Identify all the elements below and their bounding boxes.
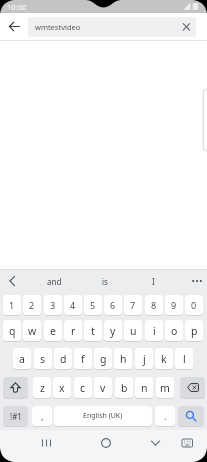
button[interactable]: j	[135, 348, 153, 369]
button[interactable]: k	[155, 348, 173, 369]
staticText: is	[102, 276, 108, 287]
button[interactable]: 5	[84, 295, 102, 315]
staticText: 3	[50, 299, 56, 311]
staticText: I	[152, 276, 155, 287]
button[interactable]	[92, 431, 117, 455]
staticText: w	[28, 324, 37, 338]
staticText: d	[60, 352, 67, 366]
button[interactable]	[175, 431, 200, 455]
button[interactable]	[28, 17, 196, 37]
staticText: s	[40, 352, 46, 366]
button[interactable]: n	[135, 377, 153, 398]
staticText: 10:00	[7, 2, 27, 12]
button[interactable]	[141, 431, 166, 455]
button[interactable]: x	[53, 377, 71, 398]
staticText: o	[171, 324, 178, 338]
button[interactable]: w	[23, 320, 41, 341]
button[interactable]: 7	[124, 295, 142, 315]
button[interactable]: 4	[64, 295, 82, 315]
staticText: n	[141, 381, 148, 395]
button[interactable]: 0	[185, 295, 203, 315]
staticText: x	[59, 381, 65, 395]
button[interactable]: g	[94, 348, 112, 369]
button[interactable]: b	[115, 377, 133, 398]
button[interactable]: ,	[32, 406, 52, 426]
button[interactable]: l	[175, 348, 193, 369]
staticText: English (UK)	[83, 411, 123, 421]
button[interactable]: c	[74, 377, 92, 398]
staticText: 5	[90, 299, 96, 311]
button[interactable]	[183, 269, 207, 293]
button[interactable]: u	[124, 320, 142, 341]
button[interactable]	[178, 17, 196, 37]
staticText: 1	[9, 299, 15, 311]
staticText: k	[161, 352, 167, 366]
button[interactable]: 2	[23, 295, 41, 315]
button[interactable]: i	[145, 320, 163, 341]
button[interactable]: y	[104, 320, 122, 341]
staticText: c	[80, 381, 86, 395]
staticText: y	[110, 324, 116, 338]
button[interactable]: d	[54, 348, 72, 369]
button[interactable]: 3	[44, 295, 62, 315]
staticText: e	[50, 324, 56, 338]
staticText: 2	[29, 299, 35, 311]
button[interactable]: r	[64, 320, 82, 341]
staticText: g	[100, 352, 107, 366]
staticText: l	[183, 352, 186, 366]
staticText: wmtestvideo	[35, 22, 81, 32]
button[interactable]: m	[156, 377, 174, 398]
staticText: and	[47, 276, 62, 287]
button[interactable]: English (UK)	[54, 406, 152, 426]
button[interactable]	[3, 377, 28, 398]
staticText: v	[100, 381, 106, 395]
button[interactable]: t	[84, 320, 102, 341]
button[interactable]: v	[94, 377, 112, 398]
button[interactable]: 8	[145, 295, 163, 315]
staticText: h	[120, 352, 127, 366]
staticText: !#1	[10, 411, 22, 422]
staticText: z	[40, 381, 45, 395]
button[interactable]	[178, 406, 204, 426]
staticText: .	[164, 410, 167, 423]
staticText: u	[130, 324, 137, 338]
button[interactable]: o	[165, 320, 183, 341]
button[interactable]: 6	[104, 295, 122, 315]
staticText: ,	[41, 410, 44, 423]
button[interactable]: !#1	[3, 406, 28, 426]
staticText: 6	[110, 299, 116, 311]
button[interactable]: 1	[3, 295, 21, 315]
button[interactable]: e	[44, 320, 62, 341]
button[interactable]: p	[185, 320, 203, 341]
button[interactable]: z	[33, 377, 51, 398]
button[interactable]	[33, 431, 58, 455]
staticText: t	[91, 324, 95, 338]
staticText: 8	[151, 299, 157, 311]
staticText: m	[160, 381, 170, 395]
staticText: p	[191, 324, 198, 338]
button[interactable]: f	[74, 348, 92, 369]
staticText: a	[19, 352, 25, 366]
staticText: f	[81, 352, 85, 366]
staticText: b	[121, 381, 128, 395]
staticText: r	[71, 324, 76, 338]
button[interactable]: s	[34, 348, 52, 369]
staticText: 7	[130, 299, 136, 311]
button[interactable]: .	[155, 406, 175, 426]
staticText: 4	[70, 299, 76, 311]
button[interactable]: 9	[165, 295, 183, 315]
staticText: q	[9, 324, 16, 338]
staticText: 9	[171, 299, 177, 311]
button[interactable]	[180, 377, 205, 398]
button[interactable]: h	[114, 348, 132, 369]
staticText: i	[153, 324, 156, 338]
button[interactable]	[2, 15, 26, 39]
button[interactable]: a	[13, 348, 31, 369]
staticText: j	[143, 352, 146, 366]
staticText: 0	[191, 299, 197, 311]
button[interactable]	[0, 269, 24, 293]
button[interactable]: q	[3, 320, 21, 341]
